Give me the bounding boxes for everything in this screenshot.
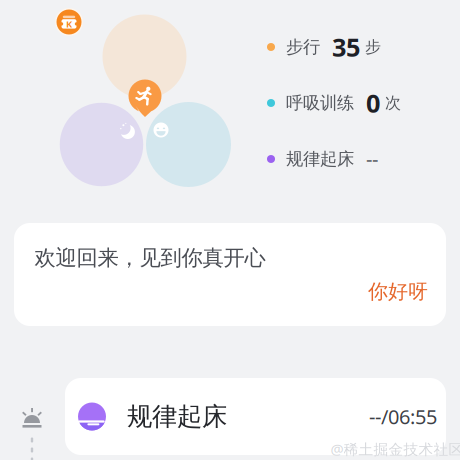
staticText: 35 [332, 30, 360, 64]
staticText: 步 [365, 37, 381, 57]
staticText: -- [366, 146, 378, 172]
staticText: @稀土掘金技术社区 [330, 439, 460, 459]
staticText: 步行 [286, 36, 320, 58]
staticText: --/06:55 [369, 403, 437, 430]
staticText: 你好呀 [368, 279, 428, 304]
staticText: 欢迎回来，见到你真开心 [34, 245, 265, 271]
button[interactable]: 欢迎回来，见到你真开心 [14, 223, 446, 326]
staticText: 0 [366, 86, 380, 120]
staticText: 规律起床 [127, 401, 227, 432]
staticText: 次 [385, 93, 401, 113]
staticText: K [66, 18, 72, 30]
button[interactable]: 规律起床 [65, 378, 446, 455]
staticText: 呼吸训练 [286, 92, 354, 114]
staticText: 规律起床 [286, 148, 354, 170]
button[interactable]: 优惠券 [55, 8, 83, 36]
